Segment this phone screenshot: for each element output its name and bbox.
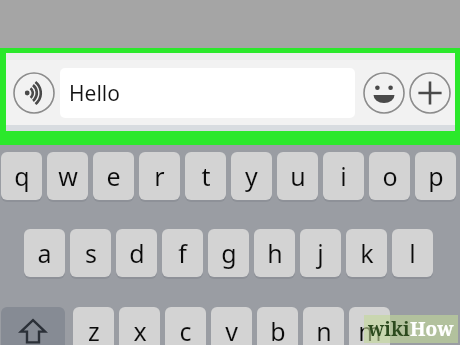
staticText: n: [316, 314, 332, 345]
button[interactable]: o: [369, 152, 410, 200]
staticText: t: [201, 159, 211, 193]
staticText: l: [409, 236, 416, 270]
button[interactable]: b: [257, 307, 298, 345]
staticText: m: [358, 314, 382, 345]
button[interactable]: w: [47, 152, 88, 200]
button[interactable]: d: [116, 229, 157, 277]
staticText: s: [85, 236, 97, 270]
staticText: x: [133, 314, 147, 345]
button[interactable]: i: [323, 152, 364, 200]
button[interactable]: a: [24, 229, 65, 277]
button[interactable]: t: [185, 152, 226, 200]
button[interactable]: j: [300, 229, 341, 277]
staticText: h: [267, 236, 283, 270]
staticText: d: [129, 236, 145, 270]
staticText: u: [290, 159, 306, 193]
staticText: p: [428, 159, 444, 193]
staticText: c: [179, 314, 192, 345]
staticText: j: [317, 236, 324, 270]
staticText: v: [225, 314, 238, 345]
staticText: f: [178, 236, 187, 270]
button[interactable]: v: [211, 307, 252, 345]
button[interactable]: z: [73, 307, 114, 345]
staticText: w: [58, 159, 78, 193]
button[interactable]: e: [93, 152, 134, 200]
button[interactable]: r: [139, 152, 180, 200]
staticText: r: [154, 159, 165, 193]
button[interactable]: y: [231, 152, 272, 200]
button[interactable]: n: [303, 307, 344, 345]
staticText: Hello: [69, 79, 120, 108]
button[interactable]: l: [392, 229, 433, 277]
button[interactable]: Send audio message: [12, 71, 56, 115]
button[interactable]: c: [165, 307, 206, 345]
staticText: k: [360, 236, 374, 270]
button[interactable]: p: [415, 152, 456, 200]
button[interactable]: Add attachment: [408, 71, 452, 115]
staticText: z: [88, 314, 100, 345]
button[interactable]: Hello: [60, 68, 355, 118]
staticText: b: [270, 314, 286, 345]
button[interactable]: x: [119, 307, 160, 345]
staticText: y: [245, 159, 258, 193]
button[interactable]: m: [349, 307, 390, 345]
button[interactable]: k: [346, 229, 387, 277]
button[interactable]: g: [208, 229, 249, 277]
staticText: q: [14, 159, 30, 193]
staticText: e: [106, 159, 121, 193]
button[interactable]: u: [277, 152, 318, 200]
staticText: o: [382, 159, 398, 193]
button[interactable]: Shift: [1, 307, 65, 345]
staticText: wiki: [368, 316, 410, 342]
staticText: How: [410, 316, 454, 342]
staticText: a: [37, 236, 52, 270]
button[interactable]: Emoji: [362, 71, 406, 115]
button[interactable]: f: [162, 229, 203, 277]
button[interactable]: h: [254, 229, 295, 277]
staticText: i: [340, 159, 347, 193]
staticText: g: [221, 236, 237, 270]
button[interactable]: s: [70, 229, 111, 277]
button[interactable]: q: [1, 152, 42, 200]
